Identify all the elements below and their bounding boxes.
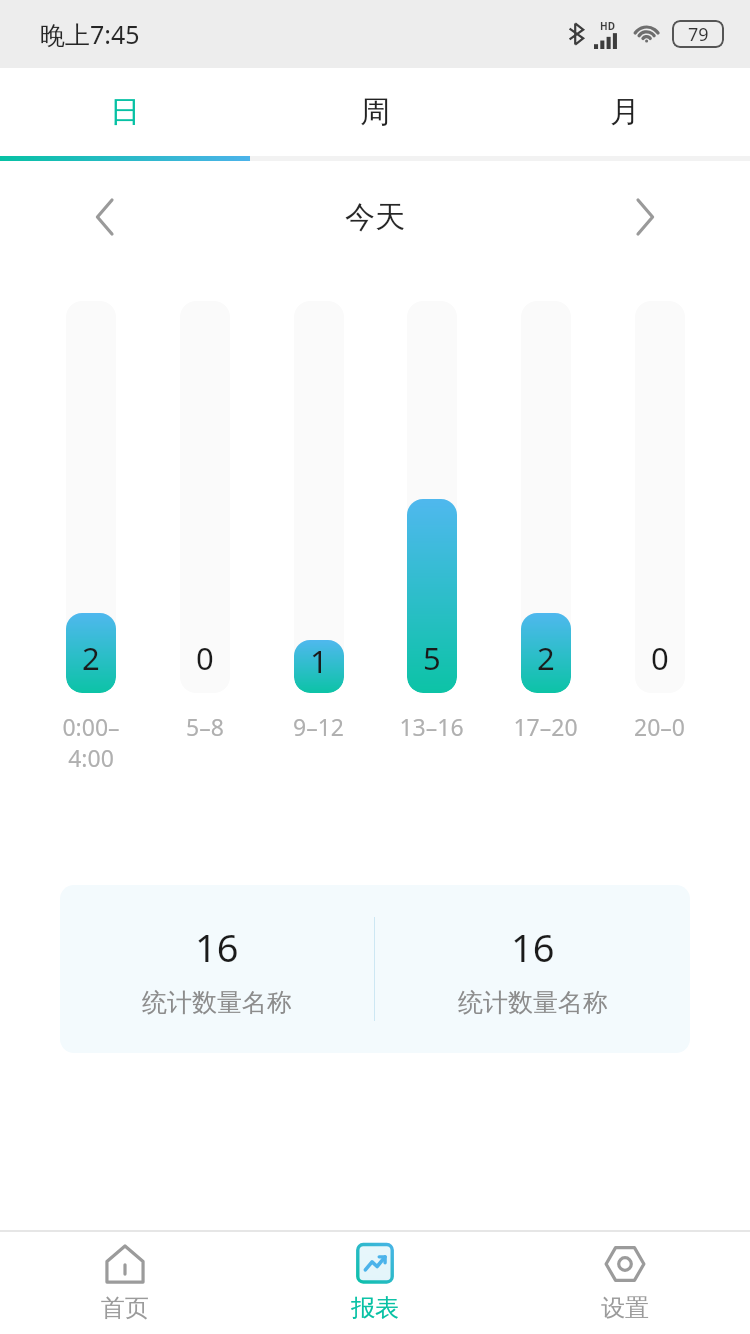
staticText: 16 xyxy=(511,921,555,973)
button[interactable]: Previous xyxy=(78,190,132,244)
staticText: 设置 xyxy=(601,1293,649,1323)
button[interactable]: 首页 xyxy=(0,1232,250,1334)
button[interactable]: Next xyxy=(618,190,672,244)
staticText: 2 xyxy=(537,637,555,679)
staticText: 0:00– 4:00 xyxy=(62,711,120,774)
staticText: 统计数量名称 xyxy=(142,987,292,1018)
staticText: 日 xyxy=(110,93,140,131)
staticText: 晚上7:45 xyxy=(40,17,140,51)
staticText: 16 xyxy=(195,921,239,973)
button[interactable]: 日 xyxy=(0,68,250,156)
button[interactable]: 设置 xyxy=(500,1232,750,1334)
staticText: 月 xyxy=(610,93,640,131)
staticText: 20–0 xyxy=(634,711,685,742)
staticText: 2 xyxy=(82,637,100,679)
staticText: 今天 xyxy=(345,198,405,236)
staticText: 统计数量名称 xyxy=(458,987,608,1018)
staticText: 5 xyxy=(423,637,441,679)
staticText: 79 xyxy=(688,22,709,47)
staticText: 9–12 xyxy=(293,711,344,742)
button[interactable]: 月 xyxy=(500,68,750,156)
button[interactable]: 周 xyxy=(250,68,500,156)
staticText: 5–8 xyxy=(186,711,224,742)
button[interactable]: 16 xyxy=(60,885,690,1053)
staticText: HD xyxy=(600,19,615,33)
staticText: 首页 xyxy=(101,1293,149,1323)
staticText: 报表 xyxy=(351,1293,399,1323)
staticText: 0 xyxy=(651,637,669,679)
staticText: 17–20 xyxy=(513,711,578,742)
button[interactable]: 报表 xyxy=(250,1232,500,1334)
staticText: 1 xyxy=(310,640,328,679)
staticText: 13–16 xyxy=(399,711,464,742)
staticText: 周 xyxy=(360,93,390,131)
staticText: 0 xyxy=(196,637,214,679)
